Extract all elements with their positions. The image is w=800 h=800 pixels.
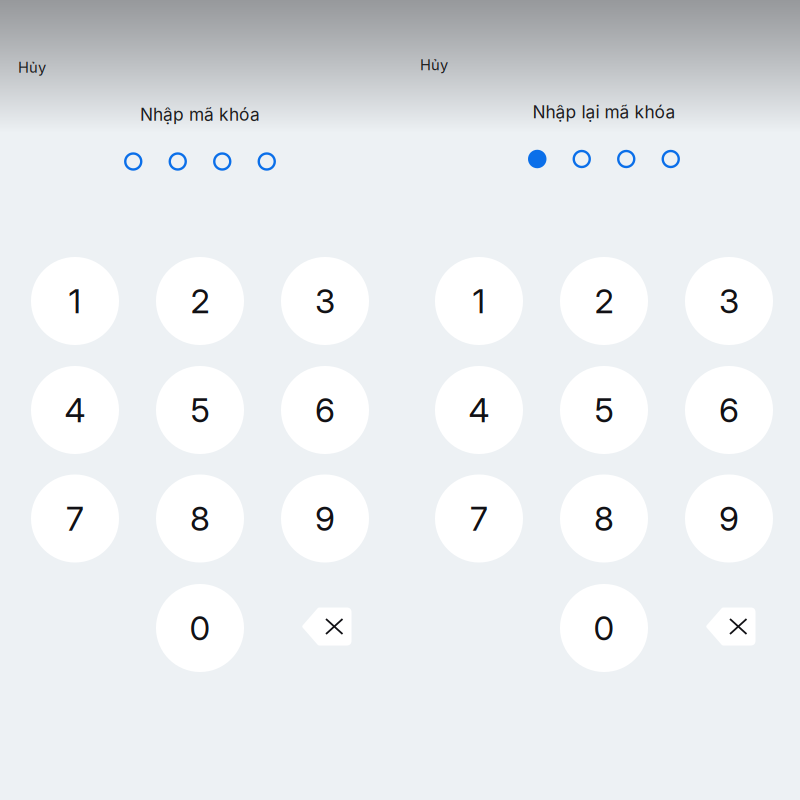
button[interactable]: 0 <box>156 584 244 672</box>
staticText: 0 <box>189 608 210 648</box>
staticText: 7 <box>66 498 84 539</box>
staticText: Nhập mã khóa <box>140 104 260 125</box>
button[interactable]: 8 <box>156 474 244 562</box>
staticText: 6 <box>719 390 739 430</box>
staticText: Hủy <box>420 56 448 74</box>
button[interactable]: 1 <box>435 257 523 345</box>
staticText: 4 <box>468 390 489 430</box>
staticText: 3 <box>719 281 739 321</box>
staticText: 6 <box>315 390 335 430</box>
staticText: 3 <box>315 281 335 321</box>
staticText: 0 <box>593 608 614 648</box>
button[interactable]: 7 <box>31 474 119 562</box>
button[interactable]: Delete <box>301 607 351 645</box>
button[interactable]: 9 <box>281 474 369 562</box>
staticText: 7 <box>470 498 488 539</box>
staticText: 5 <box>190 390 209 430</box>
button[interactable]: 3 <box>685 257 773 345</box>
button[interactable]: 0 <box>560 584 648 672</box>
staticText: 4 <box>64 390 85 430</box>
button[interactable]: 4 <box>31 366 119 454</box>
button[interactable]: 6 <box>281 366 369 454</box>
button[interactable]: 2 <box>156 257 244 345</box>
staticText: 2 <box>190 281 209 321</box>
staticText: 1 <box>68 281 81 321</box>
button[interactable]: Hủy <box>412 50 456 80</box>
button[interactable]: 4 <box>435 366 523 454</box>
staticText: 8 <box>594 498 614 539</box>
button[interactable]: 5 <box>560 366 648 454</box>
staticText: 8 <box>190 498 210 539</box>
button[interactable]: 2 <box>560 257 648 345</box>
button[interactable]: 6 <box>685 366 773 454</box>
button[interactable]: 9 <box>685 474 773 562</box>
button[interactable]: 8 <box>560 474 648 562</box>
staticText: Nhập lại mã khóa <box>532 101 675 122</box>
staticText: 5 <box>594 390 613 430</box>
button[interactable]: Hủy <box>10 52 54 82</box>
staticText: 2 <box>594 281 613 321</box>
button[interactable]: 1 <box>31 257 119 345</box>
button[interactable]: 7 <box>435 474 523 562</box>
button[interactable]: 5 <box>156 366 244 454</box>
staticText: 9 <box>315 498 335 539</box>
button[interactable]: 3 <box>281 257 369 345</box>
staticText: 1 <box>472 281 485 321</box>
staticText: Hủy <box>18 59 46 76</box>
button[interactable]: Delete <box>705 607 755 645</box>
staticText: 9 <box>719 498 739 539</box>
